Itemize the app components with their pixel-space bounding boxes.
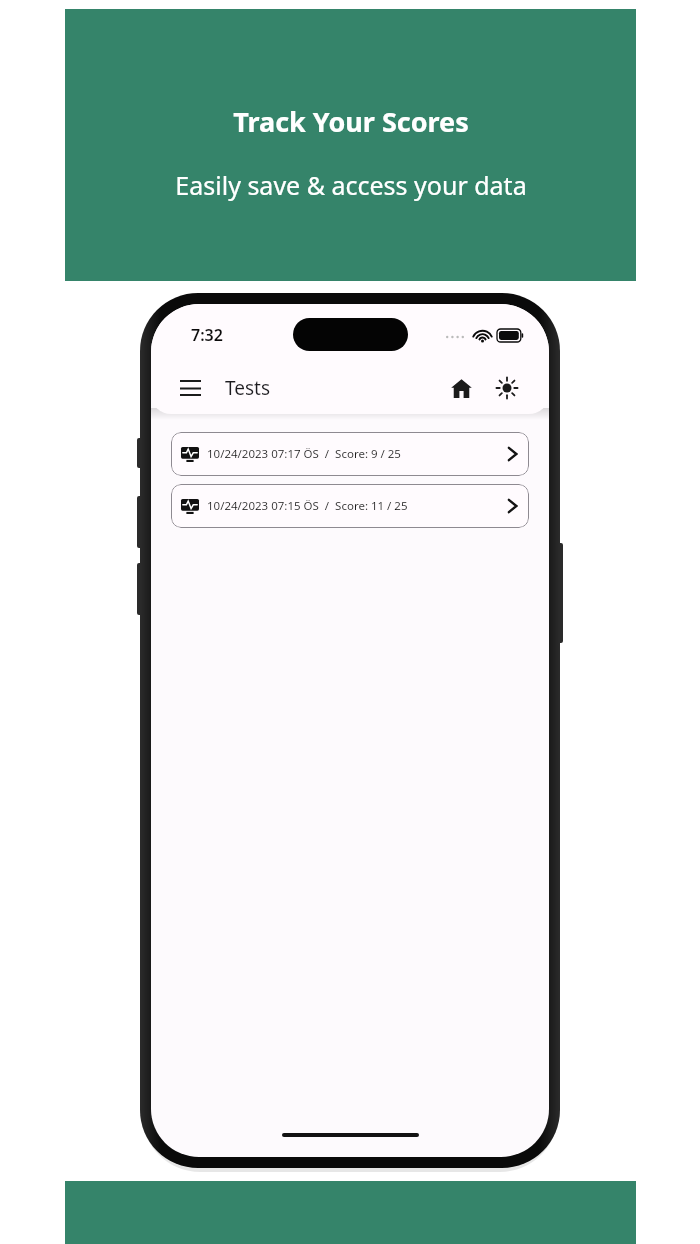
staticText: 10/24/2023 07:15 ÖS / Score: 11 / 25 <box>207 498 408 514</box>
button[interactable]: 10/24/2023 07:17 ÖS / Score: 9 / 25 <box>171 432 529 476</box>
button[interactable]: 10/24/2023 07:15 ÖS / Score: 11 / 25 <box>171 484 529 528</box>
staticText: Easily save & access your data <box>175 168 527 202</box>
staticText: 7:32 <box>191 324 223 346</box>
staticText: Track Your Scores <box>233 103 469 140</box>
staticText: 10/24/2023 07:17 ÖS / Score: 9 / 25 <box>207 446 401 462</box>
staticText: Tests <box>225 375 271 401</box>
button[interactable]: Toggle theme <box>485 366 529 410</box>
button[interactable]: Open navigation menu <box>169 367 211 409</box>
button[interactable]: Home <box>439 366 483 410</box>
